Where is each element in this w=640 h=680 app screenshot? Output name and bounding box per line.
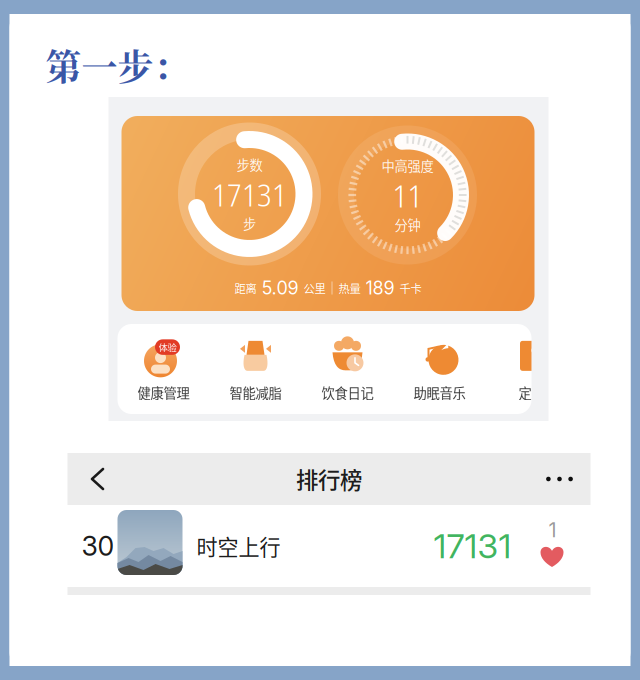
staticText: 热量 [338, 280, 360, 296]
staticText [332, 277, 338, 299]
button[interactable]: 智能减脂 [209, 328, 301, 410]
button[interactable]: 助眠音乐 [393, 328, 485, 410]
staticText: 中高强度 [381, 156, 433, 175]
staticText: 时空上行 [196, 531, 280, 561]
staticText: 步数 [236, 155, 262, 174]
staticText [325, 277, 331, 299]
staticText: 饮食日记 [321, 383, 373, 402]
staticText: 千卡 [399, 280, 421, 296]
staticText: 排行榜 [296, 463, 362, 495]
button[interactable]: Back [71, 453, 123, 505]
staticText: 5.09 [256, 277, 303, 299]
button[interactable]: 定制 [485, 328, 577, 410]
staticText: 步 [243, 214, 256, 233]
staticText: 定制 [518, 383, 544, 402]
button[interactable]: 体验 [117, 328, 209, 410]
staticText: 30 [81, 530, 114, 562]
staticText: 健康管理 [137, 383, 189, 402]
button[interactable]: More [528, 453, 590, 505]
staticText: 助眠音乐 [413, 383, 465, 402]
staticText: 189 [360, 277, 399, 299]
staticText: 第一步： [45, 39, 189, 91]
staticText: 17131 [433, 525, 511, 566]
staticText: 智能减脂 [229, 383, 281, 402]
staticText: 距离 [234, 280, 256, 296]
staticText: 17131 [212, 172, 287, 216]
staticText: 公里 [303, 280, 325, 296]
button[interactable]: 饮食日记 [301, 328, 393, 410]
button[interactable]: 30 [67, 505, 590, 587]
staticText: 分钟 [394, 215, 420, 234]
staticText: 体验 [158, 340, 176, 354]
staticText: 11 [392, 173, 422, 217]
staticText: 1 [548, 518, 556, 542]
